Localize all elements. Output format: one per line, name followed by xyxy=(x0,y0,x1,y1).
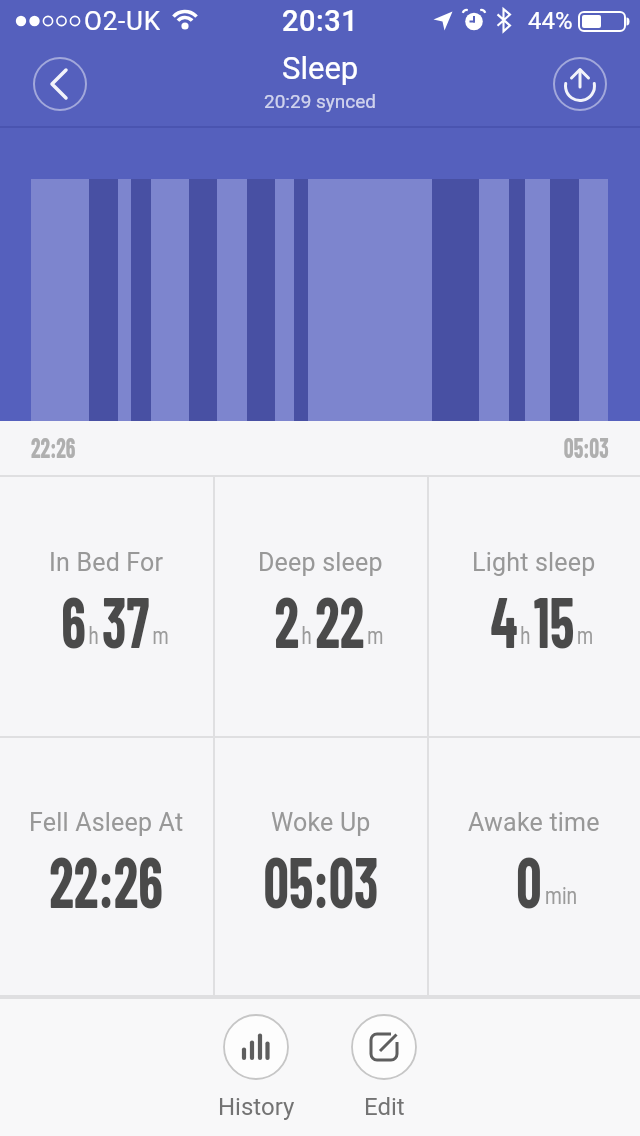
staticText: 2 xyxy=(274,578,299,662)
staticText: 44% xyxy=(528,7,573,35)
staticText: 20:29 synced xyxy=(264,90,377,112)
staticText: 6 xyxy=(61,578,86,662)
staticText: 20:31 xyxy=(282,4,359,38)
staticText: History xyxy=(218,1093,295,1121)
button[interactable]: History xyxy=(206,1014,306,1126)
staticText: 22:26 xyxy=(31,430,75,464)
staticText: Awake time xyxy=(468,808,600,837)
staticText: min xyxy=(545,882,578,910)
staticText: Deep sleep xyxy=(258,548,383,577)
staticText: 15 xyxy=(534,578,575,662)
staticText: m xyxy=(577,623,594,650)
staticText: O2-UK xyxy=(84,6,161,36)
staticText: m xyxy=(367,623,384,650)
staticText: 37 xyxy=(102,578,150,662)
staticText: h xyxy=(520,623,531,650)
button[interactable] xyxy=(553,57,607,111)
staticText: 05:03 xyxy=(263,838,379,922)
staticText: Edit xyxy=(364,1093,405,1121)
staticText: In Bed For xyxy=(49,548,164,577)
staticText: 22:26 xyxy=(49,838,164,922)
button[interactable] xyxy=(33,57,87,111)
staticText: Woke Up xyxy=(271,808,371,837)
staticText: 22 xyxy=(315,578,365,662)
staticText: 4 xyxy=(491,578,518,662)
staticText: h xyxy=(88,623,99,650)
staticText: 0 xyxy=(516,838,542,922)
button[interactable]: Edit xyxy=(334,1014,434,1126)
staticText: Sleep xyxy=(282,50,359,86)
staticText: m xyxy=(152,623,169,650)
staticText: h xyxy=(302,623,312,650)
staticText: 05:03 xyxy=(564,430,609,464)
staticText: Light sleep xyxy=(472,548,596,577)
staticText: Fell Asleep At xyxy=(29,808,184,837)
